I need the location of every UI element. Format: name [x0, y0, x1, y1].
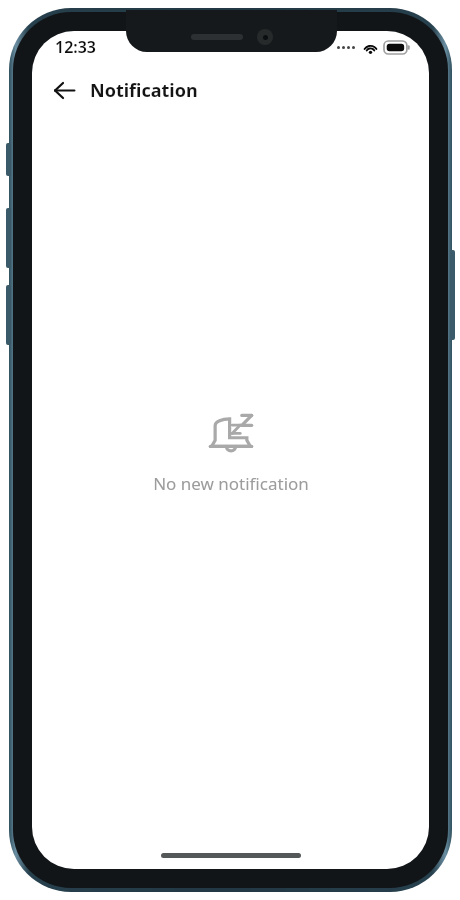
staticText: No new notification [153, 472, 309, 495]
button[interactable]: Back [44, 70, 84, 110]
staticText: 12:33 [55, 36, 97, 58]
staticText: Notification [90, 78, 198, 103]
